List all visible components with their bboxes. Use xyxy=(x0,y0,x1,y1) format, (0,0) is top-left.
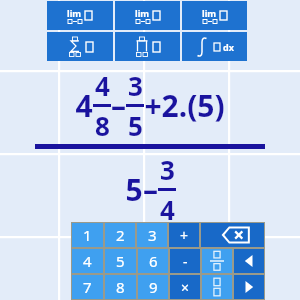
button[interactable]: Product xyxy=(115,32,180,61)
staticText: – xyxy=(143,169,158,210)
staticText: 4 xyxy=(75,85,93,126)
staticText: +2.(5) xyxy=(144,85,225,126)
button[interactable]: × xyxy=(170,275,200,299)
staticText: × xyxy=(181,278,190,297)
button[interactable]: Mixed fraction xyxy=(202,249,232,273)
staticText: 4 xyxy=(95,68,110,103)
button[interactable]: lim xyxy=(47,1,113,30)
button[interactable]: 5 xyxy=(105,249,136,273)
button[interactable]: Move right xyxy=(234,275,264,299)
button[interactable]: - xyxy=(170,249,200,273)
staticText: 4 xyxy=(160,192,175,227)
staticText: 3 xyxy=(148,225,157,245)
staticText: dx xyxy=(223,41,234,53)
button[interactable]: + xyxy=(169,223,199,247)
staticText: 8 xyxy=(95,108,110,143)
button[interactable]: 3 xyxy=(137,223,167,247)
button[interactable]: 4 xyxy=(72,249,103,273)
button[interactable]: Backspace xyxy=(201,223,264,247)
button[interactable]: Integral xyxy=(182,32,247,61)
button[interactable]: 2 xyxy=(105,223,135,247)
button[interactable]: lim xyxy=(115,1,180,30)
staticText: 5 xyxy=(125,169,143,210)
button[interactable]: Fraction xyxy=(202,275,232,299)
button[interactable]: 6 xyxy=(138,249,168,273)
staticText: 3 xyxy=(160,152,175,187)
staticText: - xyxy=(183,252,188,271)
staticText: – xyxy=(111,85,126,126)
staticText: lim xyxy=(67,7,82,19)
button[interactable]: Sum xyxy=(47,32,113,61)
staticText: 5 xyxy=(116,251,125,271)
staticText: 6 xyxy=(149,251,158,271)
button[interactable]: 7 xyxy=(72,275,103,299)
button[interactable]: 1 xyxy=(72,223,103,247)
staticText: lim xyxy=(202,7,217,19)
staticText: 3 xyxy=(128,68,143,103)
staticText: 2 xyxy=(116,225,125,245)
button[interactable]: Move left xyxy=(234,249,264,273)
button[interactable]: lim xyxy=(182,1,247,30)
staticText: lim xyxy=(135,7,150,19)
staticText: 8 xyxy=(116,277,125,297)
button[interactable]: 9 xyxy=(138,275,168,299)
staticText: 9 xyxy=(149,277,158,297)
staticText: + xyxy=(180,226,189,245)
staticText: 5 xyxy=(128,108,143,143)
staticText: 4 xyxy=(83,251,92,271)
button[interactable]: 8 xyxy=(105,275,136,299)
staticText: 7 xyxy=(83,277,92,297)
staticText: 1 xyxy=(83,225,92,245)
